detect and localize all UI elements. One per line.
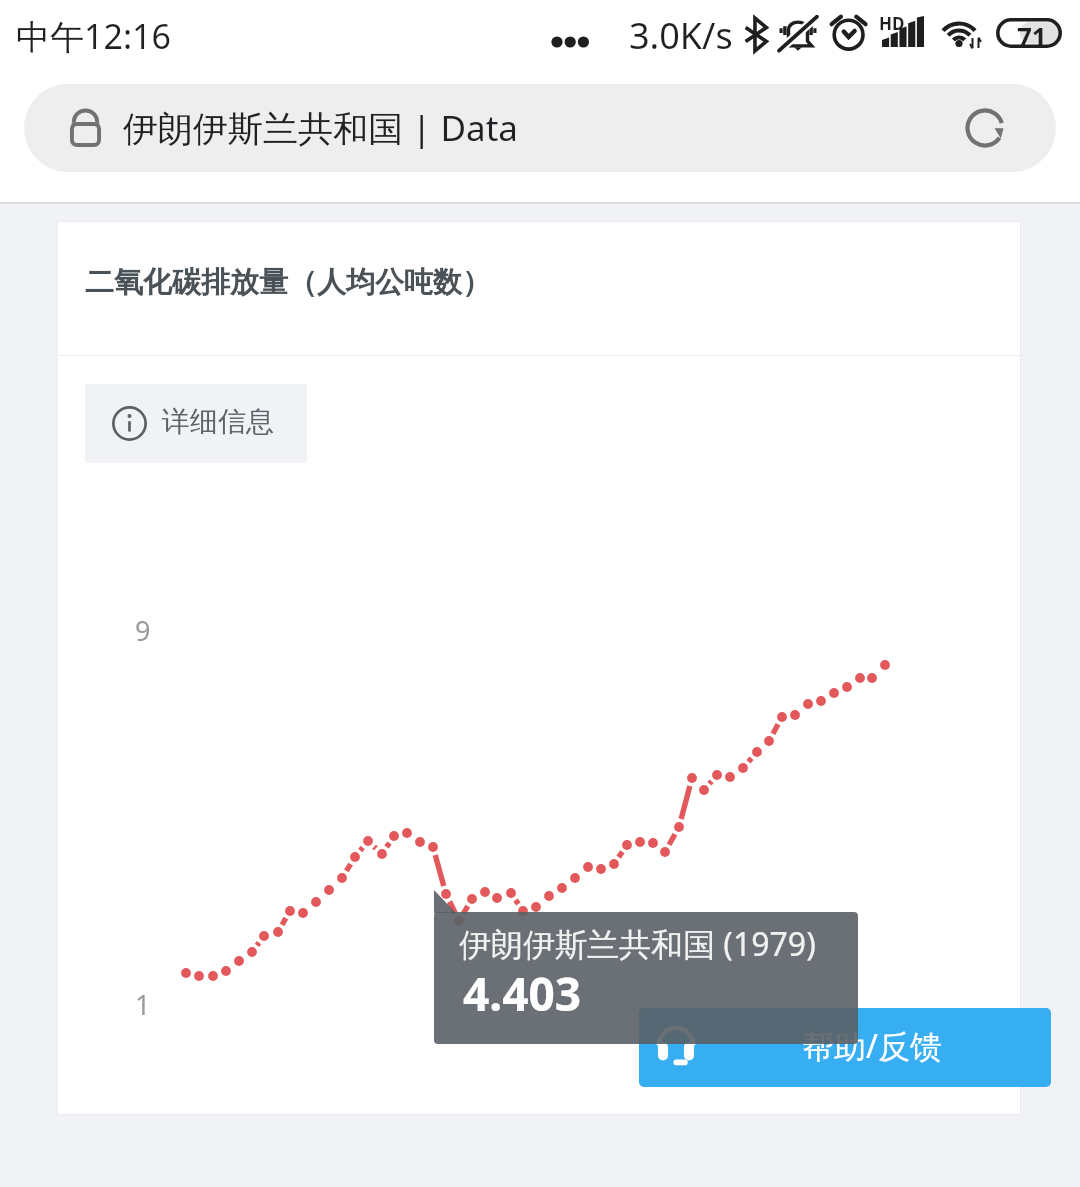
- staticText: HD: [879, 12, 905, 35]
- staticText: 中午12:16: [16, 13, 171, 59]
- staticText: 4.403: [463, 962, 582, 1025]
- button[interactable]: 详细信息: [85, 384, 307, 463]
- staticText: 伊朗伊斯兰共和国 | Data: [123, 104, 518, 152]
- staticText: 9: [135, 612, 151, 649]
- staticText: 71: [1017, 19, 1047, 49]
- button[interactable]: Reload page: [941, 84, 1029, 172]
- button[interactable]: 伊朗伊斯兰共和国 | Data: [24, 84, 1056, 172]
- staticText: 二氧化碳排放量（人均公吨数）: [85, 264, 491, 301]
- staticText: 详细信息: [162, 404, 274, 439]
- staticText: 3.0K/s: [629, 11, 733, 60]
- staticText: 伊朗伊斯兰共和国 (1979): [459, 922, 816, 966]
- button[interactable]: 帮助/反馈: [639, 1008, 1051, 1087]
- staticText: 帮助/反馈: [802, 1024, 942, 1068]
- staticText: 1: [135, 986, 151, 1023]
